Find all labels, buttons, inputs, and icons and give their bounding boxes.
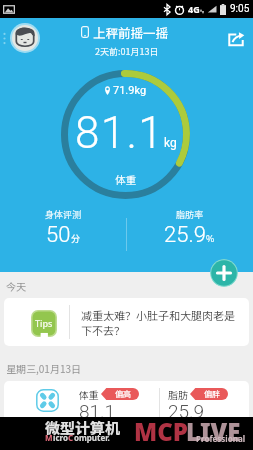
button[interactable]: Add record xyxy=(210,259,238,287)
staticText: Tips xyxy=(35,317,53,329)
staticText: 25.9 xyxy=(164,222,206,248)
staticText: 体重 xyxy=(79,387,99,401)
button[interactable]: Share xyxy=(223,26,249,52)
staticText: C xyxy=(68,432,74,443)
staticText: 上秤前摇一摇 xyxy=(93,23,169,41)
staticText: kg xyxy=(164,136,177,150)
button[interactable]: 脂肪率 xyxy=(126,208,253,248)
staticText: 减重太难？小肚子和大腿肉老是下不去？ xyxy=(81,307,239,338)
staticText: 身体评测 xyxy=(45,208,82,221)
staticText: 今天 xyxy=(6,279,26,293)
staticText: % xyxy=(206,232,215,245)
button[interactable]: 体重 xyxy=(4,381,249,429)
staticText: 71.9kg xyxy=(113,84,147,97)
staticText: 偏高 xyxy=(115,388,131,400)
staticText: 脂肪 xyxy=(168,387,188,401)
staticText: Professional xyxy=(196,433,246,444)
staticText: 分 xyxy=(71,232,81,245)
staticText: 星期三,01月13日 xyxy=(6,361,81,375)
staticText: 81.1 xyxy=(79,400,116,422)
staticText: icro xyxy=(53,432,68,443)
staticText: omputer. xyxy=(74,432,110,443)
staticText: 81.1 xyxy=(75,107,164,159)
staticText: M xyxy=(45,432,53,443)
button[interactable]: 身体评测 xyxy=(0,208,126,248)
staticText: 微型计算机 xyxy=(45,417,121,439)
staticText: 2天前:01月13日 xyxy=(95,45,159,58)
button[interactable]: 上秤前摇一摇 xyxy=(81,23,169,41)
staticText: 50 xyxy=(46,222,71,248)
staticText: LIVE xyxy=(186,415,241,448)
staticText: 9:05 xyxy=(230,3,250,15)
staticText: 脂肪率 xyxy=(176,208,204,221)
staticText: MCP xyxy=(134,415,188,448)
button[interactable]: Profile xyxy=(10,23,40,53)
staticText: 4G xyxy=(188,3,200,15)
staticText: 25.9 xyxy=(168,400,205,422)
button[interactable]: Tips xyxy=(4,298,249,346)
staticText: 体重 xyxy=(115,172,136,187)
staticText: 偏胖 xyxy=(204,388,220,400)
